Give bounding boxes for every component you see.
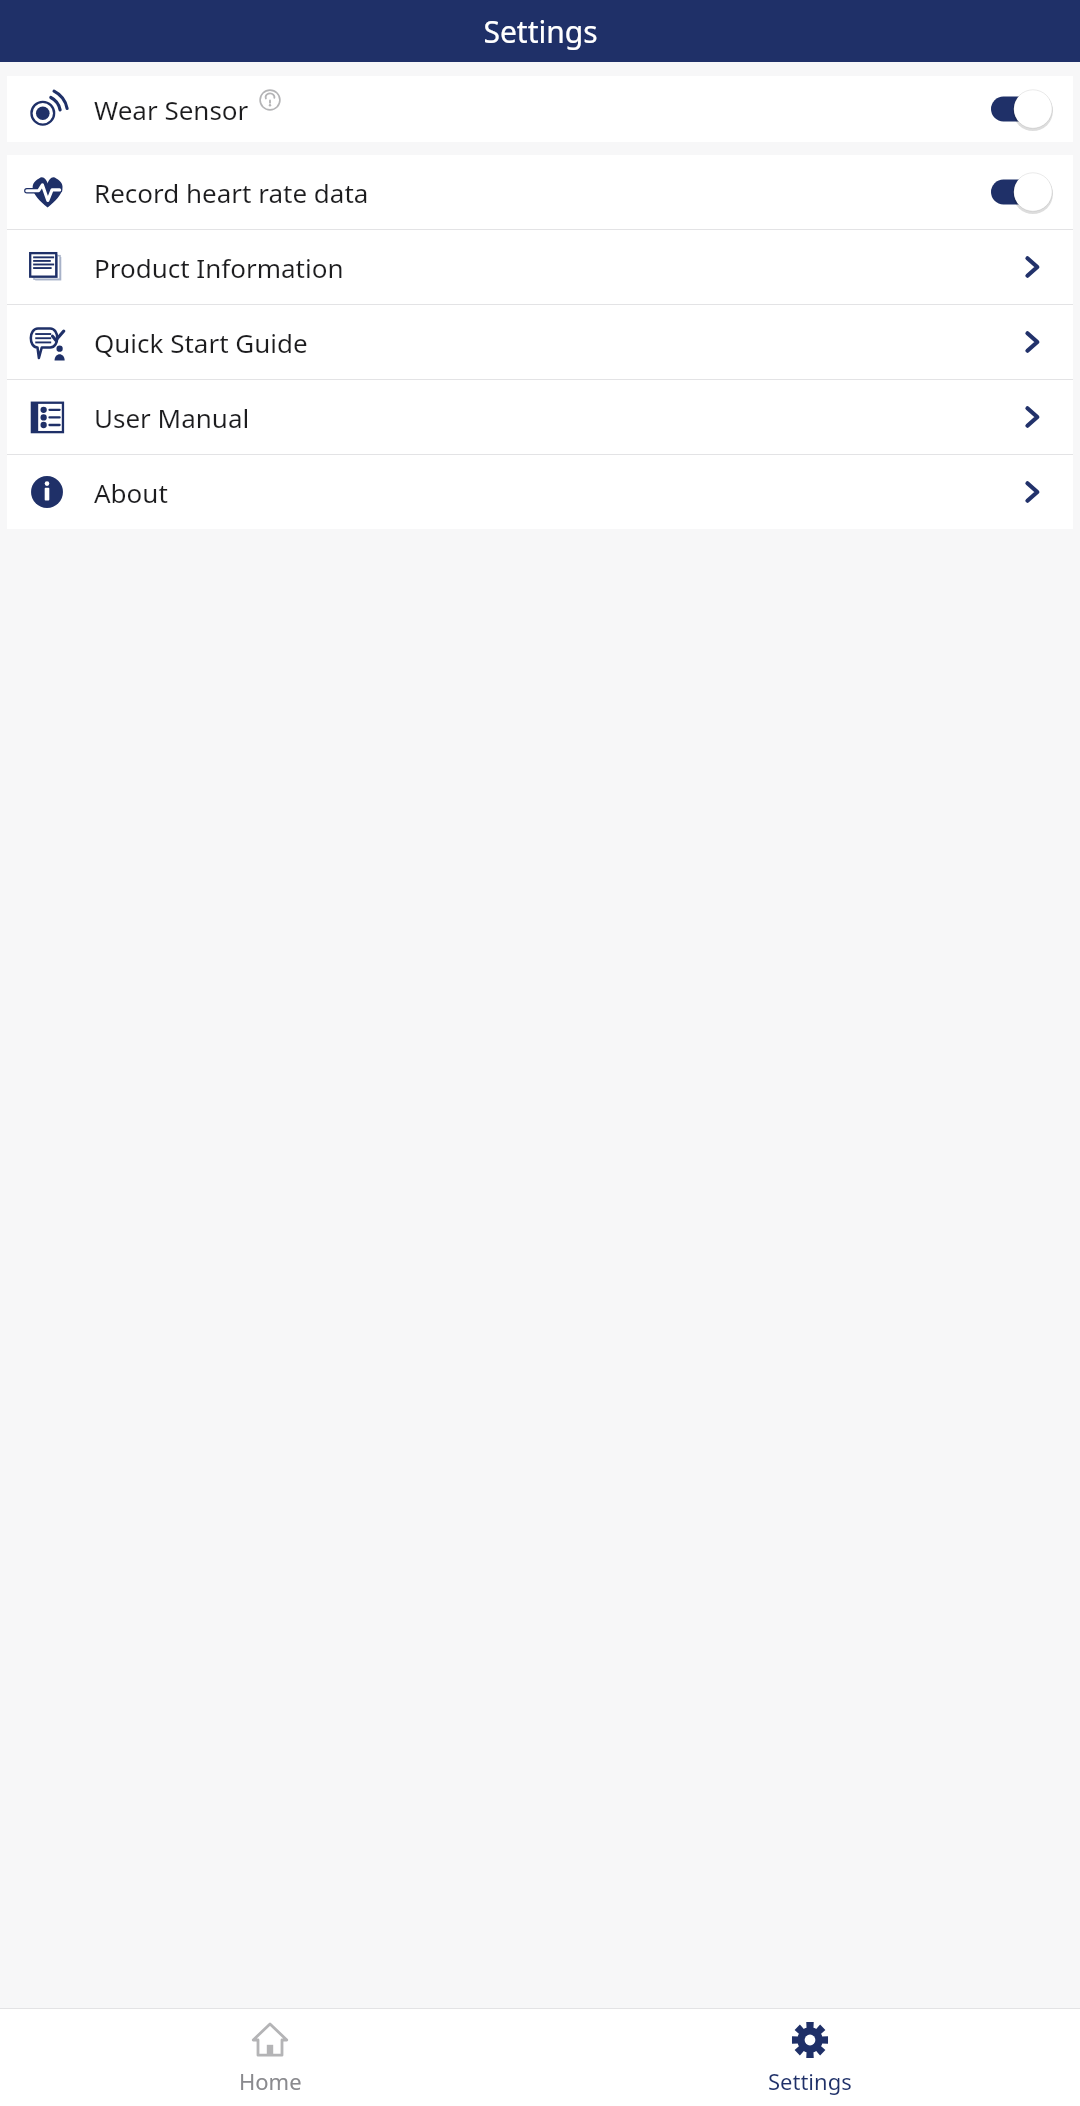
staticText: Settings: [768, 2066, 852, 2096]
button[interactable]: Home: [0, 2014, 540, 2102]
staticText: Record heart rate data: [94, 175, 369, 210]
other: Home: [250, 2020, 290, 2060]
button[interactable]: Wear Sensor: [7, 76, 1073, 142]
button[interactable]: Help about Wear Sensor: [259, 89, 281, 111]
button[interactable]: User Manual: [7, 380, 1073, 454]
staticText: Wear Sensor: [94, 92, 249, 127]
staticText: About: [94, 475, 168, 510]
button[interactable]: Toggle on: [991, 172, 1051, 212]
button[interactable]: About: [7, 455, 1073, 529]
staticText: Home: [239, 2066, 302, 2096]
staticText: Product Information: [94, 250, 344, 285]
button[interactable]: Record heart rate data: [7, 155, 1073, 229]
staticText: Settings: [483, 11, 598, 52]
button[interactable]: Quick Start Guide: [7, 305, 1073, 379]
other: Settings: [790, 2020, 830, 2060]
staticText: Quick Start Guide: [94, 325, 308, 360]
button[interactable]: Toggle on: [991, 89, 1051, 129]
button[interactable]: Settings: [540, 2014, 1080, 2102]
button[interactable]: Product Information: [7, 230, 1073, 304]
staticText: User Manual: [94, 400, 250, 435]
